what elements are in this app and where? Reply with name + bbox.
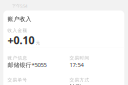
staticText: 账户信息 xyxy=(7,55,27,61)
staticText: 交易时间 xyxy=(69,55,89,61)
staticText: +0.10 xyxy=(7,33,34,47)
staticText: 交易方式 xyxy=(69,77,89,83)
staticText: 收入金额 xyxy=(7,28,27,33)
staticText: 账户收入 xyxy=(7,15,31,23)
staticText: 邮储银行*5055 xyxy=(7,61,46,69)
staticText: 交易单号 xyxy=(7,77,27,83)
button[interactable]: 账户收入 xyxy=(3,10,124,85)
staticText: 元 xyxy=(36,40,40,45)
staticText: 转账 xyxy=(69,83,81,85)
staticText: 下午5:54 xyxy=(12,3,27,9)
staticText: 17:54 xyxy=(69,61,83,69)
